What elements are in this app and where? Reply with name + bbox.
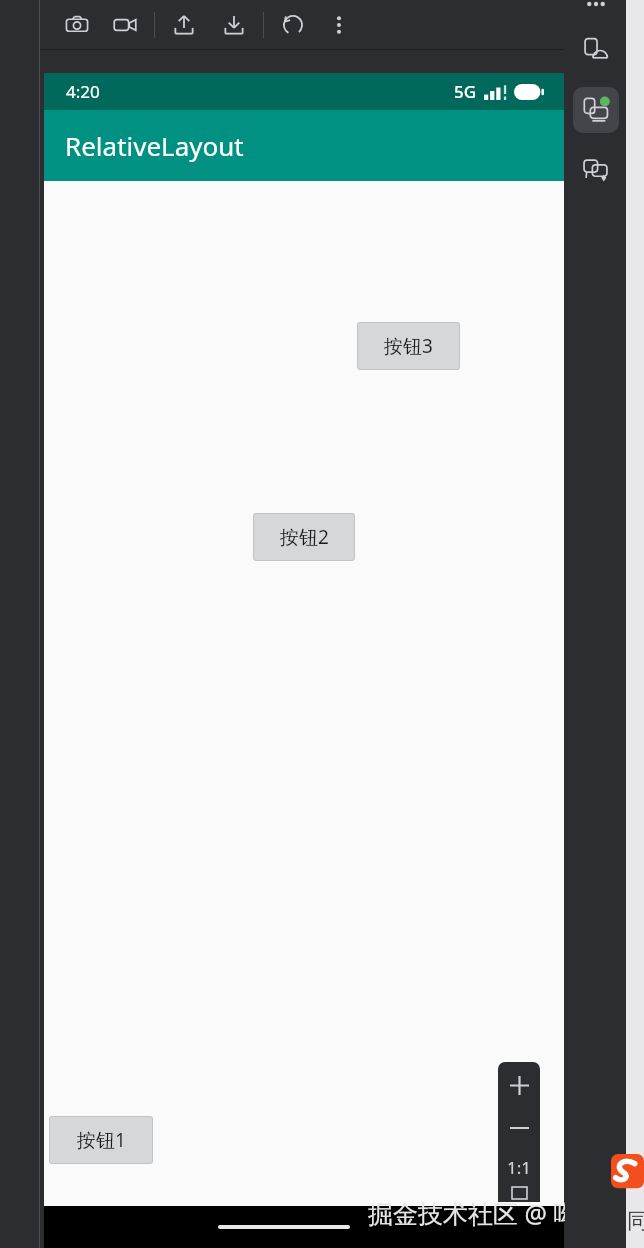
button[interactable]: Fit to screen [498,1186,540,1202]
button[interactable]: 按钮3 [357,322,460,370]
button[interactable]: 1:1 [498,1148,540,1186]
button[interactable]: 按钮1 [49,1116,153,1164]
button[interactable]: Record screen [106,6,144,44]
button[interactable]: Rotate [274,6,312,44]
button[interactable]: More options [320,6,358,44]
staticText: 按钮2 [280,524,329,550]
staticText: 5G [454,80,477,103]
staticText: 1:1 [507,1156,532,1179]
button[interactable]: Zoom out [498,1108,540,1148]
button[interactable]: Upload [165,6,203,44]
button[interactable]: Device Manager [565,26,626,74]
button[interactable]: Running Devices [573,87,619,133]
staticText: 按钮1 [77,1127,126,1153]
staticText: 掘金技术社区 @ 呦呼457 [368,1196,644,1230]
button[interactable]: Running devices [565,0,626,22]
staticText: 4:20 [66,80,100,103]
button[interactable]: Gemini [565,146,626,194]
button[interactable]: Take screenshot [58,6,96,44]
staticText: 同 [627,1208,644,1234]
button[interactable]: Zoom in [498,1062,540,1108]
staticText: 按钮3 [384,333,433,359]
staticText: RelativeLayout [65,128,244,163]
button[interactable]: Download [215,6,253,44]
button[interactable]: 按钮2 [253,513,355,561]
